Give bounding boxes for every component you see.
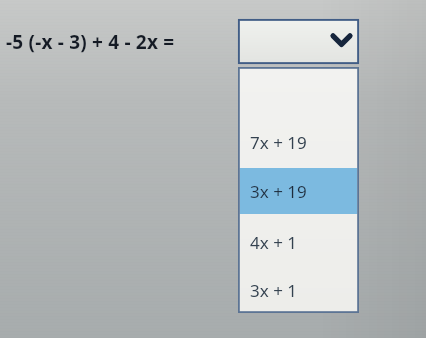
button[interactable]: 3x + 1 [240, 267, 357, 313]
button[interactable]: Answer dropdown, collapsed [238, 19, 359, 64]
staticText: 4x + 1 [250, 231, 298, 254]
staticText: 3x + 19 [250, 180, 307, 203]
staticText: -5 (-x - 3) + 4 - 2x = [6, 29, 175, 55]
button[interactable]: 3x + 19 [240, 168, 357, 214]
staticText: 3x + 1 [250, 279, 298, 302]
button[interactable]: 7x + 19 [240, 119, 357, 165]
staticText: 7x + 19 [250, 131, 307, 154]
button[interactable]: 4x + 1 [240, 219, 357, 265]
